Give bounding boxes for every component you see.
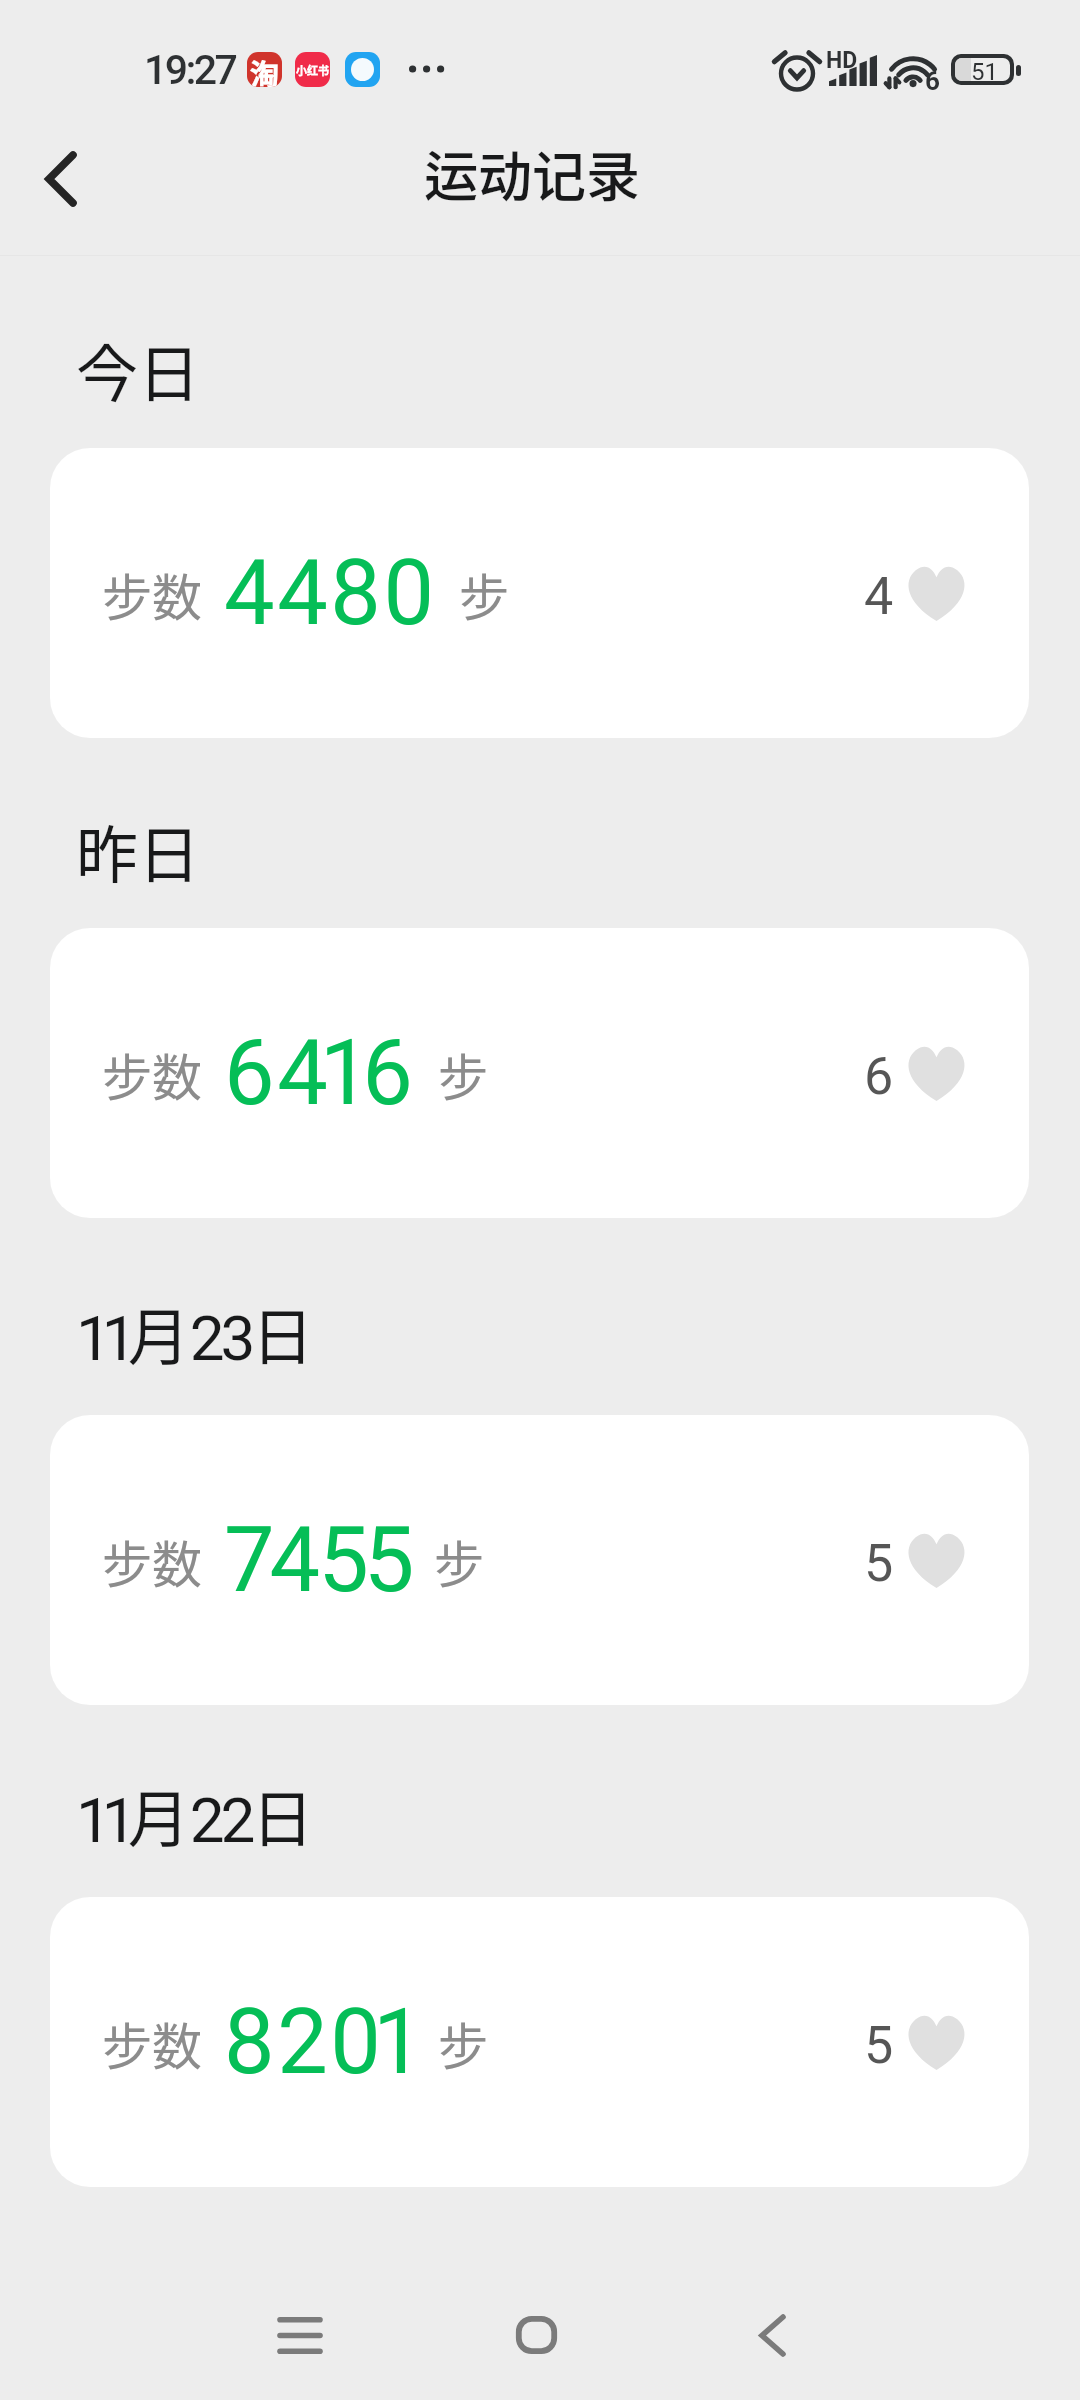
- staticText: 11月22日: [76, 1770, 314, 1860]
- staticText: 51: [971, 58, 998, 81]
- staticText: 5: [864, 1533, 894, 1594]
- button[interactable]: Back: [15, 119, 107, 239]
- button[interactable]: 步数: [50, 928, 1029, 1218]
- staticText: 运动记录: [424, 134, 640, 212]
- button[interactable]: Recent apps: [237, 2275, 363, 2395]
- button[interactable]: Home: [473, 2275, 599, 2395]
- staticText: 今日: [76, 325, 201, 415]
- staticText: 步: [438, 2007, 488, 2079]
- staticText: 7455: [224, 1508, 412, 1613]
- staticText: 4480: [224, 541, 437, 646]
- button[interactable]: 步数: [50, 1897, 1029, 2187]
- staticText: 小红书: [296, 62, 329, 78]
- button[interactable]: Back: [709, 2275, 835, 2395]
- staticText: 8201: [224, 1990, 416, 2095]
- staticText: 步: [438, 1038, 488, 1110]
- staticText: HD: [826, 47, 858, 74]
- staticText: 步数: [102, 558, 202, 630]
- staticText: 步数: [102, 2007, 202, 2079]
- staticText: 淘: [250, 52, 280, 87]
- staticText: 19:27: [144, 46, 236, 94]
- staticText: 6416: [224, 1021, 416, 1126]
- button[interactable]: 步数: [50, 448, 1029, 738]
- staticText: 11月23日: [76, 1288, 314, 1378]
- staticText: 步: [459, 558, 509, 630]
- staticText: 6: [925, 66, 940, 96]
- staticText: 6: [864, 1046, 894, 1107]
- button[interactable]: 步数: [50, 1415, 1029, 1705]
- staticText: 5: [864, 2015, 894, 2076]
- staticText: 步: [434, 1525, 484, 1597]
- staticText: 步数: [102, 1038, 202, 1110]
- staticText: 昨日: [76, 806, 201, 896]
- staticText: 步数: [102, 1525, 202, 1597]
- staticText: 4: [864, 566, 894, 627]
